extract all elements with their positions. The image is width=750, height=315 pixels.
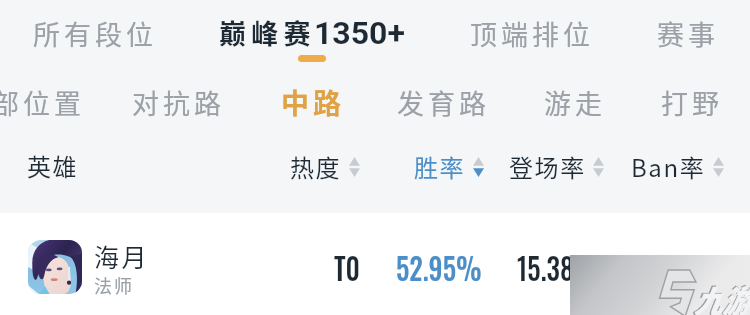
button[interactable]: 顶端排位 bbox=[470, 14, 594, 53]
button[interactable]: 发育路 bbox=[397, 83, 490, 122]
staticText: 15.38% bbox=[517, 245, 600, 289]
staticText: Ban率 bbox=[631, 149, 706, 184]
staticText: 全部位置 bbox=[0, 83, 85, 122]
staticText: 九游 bbox=[694, 277, 750, 315]
staticText: 游走 bbox=[544, 83, 606, 122]
button[interactable]: 巅峰赛 bbox=[219, 13, 407, 62]
staticText: 热度 bbox=[290, 149, 342, 184]
staticText: 英雄 bbox=[27, 148, 79, 183]
staticText: 发育路 bbox=[397, 83, 490, 122]
button[interactable]: 打野 bbox=[661, 83, 723, 122]
button[interactable]: 赛事 bbox=[657, 14, 719, 53]
button[interactable]: 对抗路 bbox=[132, 83, 225, 122]
staticText: 52.95% bbox=[396, 245, 482, 289]
button[interactable]: 胜率 bbox=[414, 149, 484, 184]
staticText: 所有段位 bbox=[33, 14, 157, 53]
staticText: 法师 bbox=[94, 272, 134, 298]
button[interactable]: 所有段位 bbox=[33, 14, 157, 53]
button[interactable]: 登场率 bbox=[509, 149, 604, 184]
button[interactable]: 热度 bbox=[290, 149, 360, 184]
staticText: 打野 bbox=[661, 83, 723, 122]
button[interactable]: 游走 bbox=[544, 83, 606, 122]
staticText: 对抗路 bbox=[132, 83, 225, 122]
staticText: 1350+ bbox=[314, 14, 405, 52]
staticText: 海月 bbox=[94, 238, 149, 274]
button[interactable]: 海月 bbox=[0, 213, 750, 315]
button[interactable]: Ban率 bbox=[631, 149, 724, 184]
staticText: 顶端排位 bbox=[470, 14, 594, 53]
staticText: 登场率 bbox=[509, 149, 586, 184]
button[interactable]: 全部位置 bbox=[0, 83, 85, 122]
button[interactable]: 英雄 bbox=[27, 148, 79, 183]
staticText: 巅峰赛 bbox=[219, 13, 316, 52]
staticText: T0 bbox=[334, 245, 360, 289]
staticText: 九游 bbox=[692, 275, 750, 315]
button[interactable]: 中路 bbox=[281, 82, 346, 123]
staticText: 赛事 bbox=[657, 14, 719, 53]
staticText: 中路 bbox=[281, 82, 346, 123]
staticText: 胜率 bbox=[414, 149, 466, 184]
